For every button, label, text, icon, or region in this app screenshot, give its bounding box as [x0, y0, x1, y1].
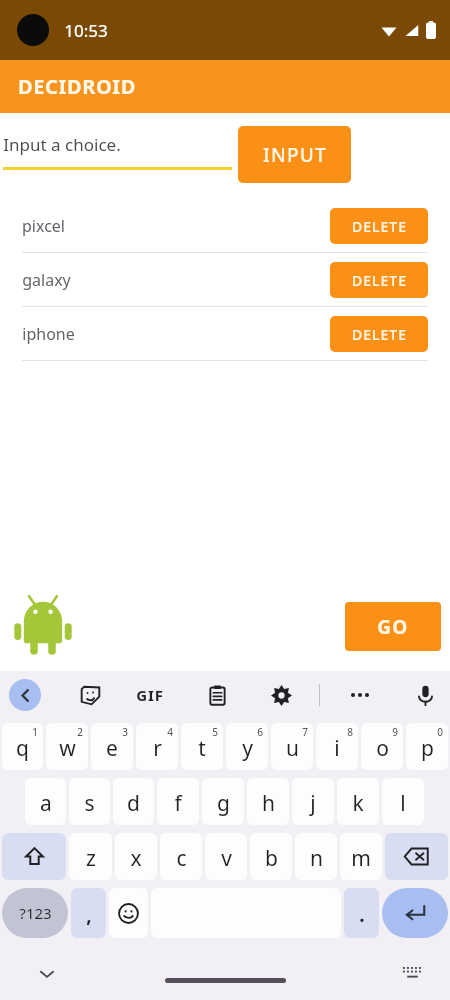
staticText: , — [86, 902, 92, 928]
staticText: c — [176, 844, 187, 873]
button[interactable]: h — [247, 778, 289, 825]
staticText: ?123 — [19, 903, 52, 923]
staticText: galaxy — [22, 269, 71, 291]
staticText: s — [84, 789, 95, 818]
button[interactable]: m — [340, 833, 382, 880]
staticText: i — [334, 734, 340, 763]
staticText: Input a choice. — [3, 133, 121, 156]
staticText: e — [106, 734, 118, 763]
button[interactable]: Clipboard — [203, 681, 231, 709]
button[interactable]: INPUT — [238, 126, 351, 183]
button[interactable]: Switch keyboard — [398, 960, 426, 988]
staticText: j — [310, 789, 316, 818]
button[interactable]: g — [202, 778, 244, 825]
button[interactable]: u — [271, 723, 313, 770]
staticText: 5 — [212, 725, 218, 739]
staticText: 10:53 — [64, 19, 108, 42]
button[interactable]: Enter — [382, 888, 448, 938]
button[interactable]: Settings — [267, 681, 295, 709]
button[interactable]: More options — [346, 681, 374, 709]
button[interactable]: Emoji — [109, 888, 148, 938]
staticText: 9 — [392, 725, 398, 739]
staticText: d — [127, 789, 140, 818]
staticText: v — [221, 844, 232, 873]
button[interactable]: Shift — [2, 833, 66, 880]
staticText: 4 — [167, 725, 173, 739]
button[interactable]: d — [113, 778, 154, 825]
staticText: . — [359, 902, 365, 928]
button[interactable]: GIF — [136, 685, 164, 705]
staticText: m — [351, 844, 371, 873]
button[interactable]: q — [2, 723, 43, 770]
button[interactable]: Back — [9, 679, 41, 711]
button[interactable]: r — [136, 723, 178, 770]
staticText: z — [86, 844, 96, 873]
other: Android mascot — [14, 595, 72, 657]
button[interactable]: Hide keyboard — [33, 960, 61, 988]
staticText: o — [376, 734, 389, 763]
button[interactable]: l — [382, 778, 424, 825]
button[interactable]: s — [69, 778, 110, 825]
button[interactable]: o — [361, 723, 403, 770]
button[interactable]: DELETE — [330, 316, 428, 352]
button[interactable]: iphone — [0, 307, 450, 361]
button[interactable]: , — [71, 888, 106, 938]
staticText: DELETE — [352, 325, 407, 344]
staticText: DELETE — [352, 217, 407, 236]
staticText: l — [400, 789, 406, 818]
button[interactable]: j — [292, 778, 334, 825]
button[interactable]: p — [406, 723, 448, 770]
staticText: 8 — [347, 725, 353, 739]
staticText: iphone — [22, 323, 75, 345]
staticText: INPUT — [263, 142, 327, 168]
staticText: 6 — [257, 725, 263, 739]
button[interactable]: pixcel — [0, 199, 450, 253]
button[interactable]: b — [250, 833, 292, 880]
button[interactable]: v — [205, 833, 247, 880]
staticText: 0 — [437, 725, 443, 739]
staticText: pixcel — [22, 215, 65, 237]
staticText: GIF — [136, 685, 164, 705]
button[interactable]: ?123 — [2, 888, 68, 938]
staticText: x — [130, 844, 142, 873]
button[interactable]: w — [46, 723, 88, 770]
button[interactable]: z — [69, 833, 112, 880]
button[interactable]: Backspace — [385, 833, 448, 880]
staticText: DELETE — [352, 271, 407, 290]
button[interactable]: c — [160, 833, 202, 880]
button[interactable]: i — [316, 723, 358, 770]
staticText: GO — [377, 614, 409, 640]
button[interactable]: DELETE — [330, 262, 428, 298]
staticText: 3 — [122, 725, 128, 739]
button[interactable]: Voice input — [411, 681, 439, 709]
staticText: b — [265, 844, 278, 873]
button[interactable]: a — [25, 778, 66, 825]
staticText: y — [242, 734, 253, 763]
button[interactable]: x — [115, 833, 157, 880]
button[interactable]: t — [181, 723, 223, 770]
button[interactable]: DELETE — [330, 208, 428, 244]
button[interactable]: f — [157, 778, 199, 825]
button[interactable]: k — [337, 778, 379, 825]
button[interactable]: e — [91, 723, 133, 770]
staticText: h — [262, 789, 275, 818]
staticText: f — [174, 789, 182, 818]
staticText: q — [16, 734, 29, 763]
staticText: n — [310, 844, 323, 873]
staticText: k — [352, 789, 364, 818]
staticText: 7 — [302, 725, 308, 739]
button[interactable]: galaxy — [0, 253, 450, 307]
staticText: DECIDROID — [18, 73, 136, 100]
staticText: p — [421, 734, 434, 763]
staticText: u — [286, 734, 299, 763]
staticText: t — [198, 734, 206, 763]
button[interactable]: y — [226, 723, 268, 770]
button[interactable]: . — [344, 888, 379, 938]
staticText: r — [153, 734, 162, 763]
button[interactable]: Stickers — [76, 681, 104, 709]
staticText: g — [217, 789, 230, 818]
button[interactable]: n — [295, 833, 337, 880]
staticText: 2 — [77, 725, 83, 739]
button[interactable]: GO — [345, 602, 441, 651]
